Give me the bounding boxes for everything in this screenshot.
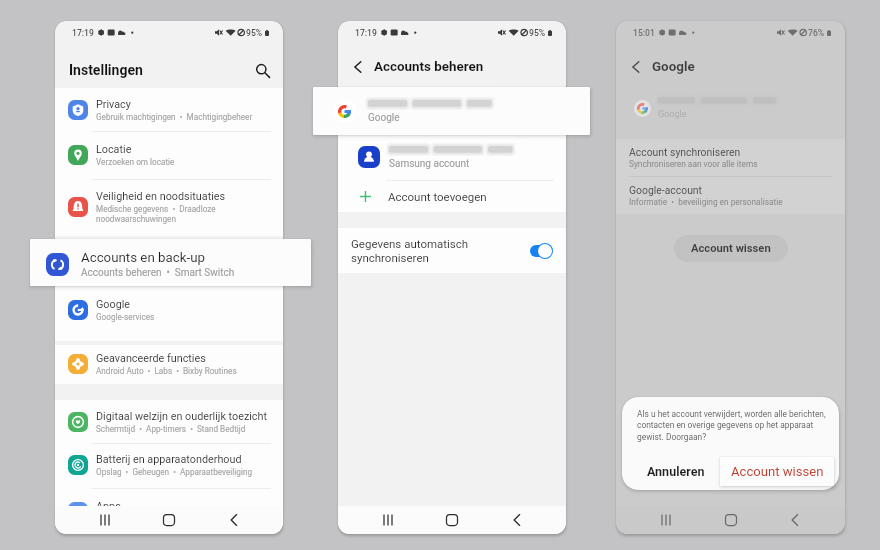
staticText: Privacy [96,98,131,111]
staticText: Account wissen [731,464,824,479]
staticText: Google [652,59,695,75]
button[interactable]: Account synchroniseren [616,139,845,176]
staticText: Apps [96,500,121,513]
button[interactable]: Home [437,506,467,534]
staticText: Google [96,298,131,311]
staticText: 15:01 [633,28,655,38]
staticText: Schermtijd • App-timers • Stand Bedtijd [96,424,246,434]
button[interactable]: Gegevens automatisch synchroniseren [338,228,566,273]
button[interactable]: Search [250,58,274,82]
button[interactable]: Google [616,91,845,125]
button[interactable]: Google [55,286,283,334]
button[interactable]: Samsung account [338,134,566,180]
staticText: Annuleren [647,464,705,479]
staticText: Opslag • Geheugen • Apparaatbeveiliging [96,467,253,477]
staticText: Digitaal welzijn en ouderlijk toezicht [96,410,268,423]
staticText: Google [368,112,400,124]
button[interactable]: Geavanceerde functies [55,345,283,383]
staticText: Veiligheid en noodsituaties [96,190,226,203]
button[interactable]: Back [625,56,647,78]
button[interactable]: Account wissen [720,457,834,486]
staticText: Google-account [629,184,702,196]
staticText: Account synchroniseren [629,146,741,158]
staticText: Standaard-apps • App-instellingen [96,514,223,524]
staticText: Android Auto • Labs • Bixby Routines [96,366,237,376]
staticText: Google [658,109,687,120]
staticText: 76% [808,28,825,38]
staticText: Gegevens automatisch synchroniseren [351,237,530,265]
staticText: 17:19 [355,28,377,38]
button[interactable]: Privacy [55,88,283,131]
staticText: 95% [246,28,263,38]
button[interactable]: Account wissen [674,235,788,262]
staticText: Instellingen [69,62,143,78]
button[interactable]: Digitaal welzijn en ouderlijk toezicht [55,400,283,443]
button[interactable]: Recent apps [373,506,403,534]
button[interactable]: Home [154,506,184,534]
staticText: 95% [529,28,546,38]
staticText: Als u het account verwijdert, worden all… [637,409,829,442]
button[interactable]: Recent apps [90,506,120,534]
button[interactable]: Recent apps [651,506,681,534]
staticText: Accounts en back-up [81,250,205,266]
button[interactable]: Google-account [616,177,845,214]
staticText: Account toevoegen [388,190,487,203]
staticText: Accounts beheren • Smart Switch [81,267,235,279]
staticText: Batterij en apparaatonderhoud [96,453,242,466]
button[interactable]: Back [780,506,810,534]
staticText: Informatie • beveiliging en personalisat… [629,197,783,207]
staticText: Gebruik machtigingen • Machtigingbeheer [96,112,253,122]
button[interactable]: Locatie [55,131,283,179]
button[interactable]: Account toevoegen [338,180,566,212]
button[interactable]: Batterij en apparaatonderhoud [55,443,283,486]
button[interactable]: Home [716,506,746,534]
staticText: Google-services [96,312,155,322]
staticText: Accounts beheren [374,59,484,75]
button[interactable]: Back [347,56,369,78]
staticText: Synchroniseren aan voor alle items [629,159,758,169]
staticText: Samsung account [389,158,470,170]
staticText: Medische gegevens • Draadloze noodwaarsc… [96,204,220,224]
button[interactable]: Back [502,506,532,534]
button[interactable]: Apps [55,490,283,533]
staticText: Geavanceerde functies [96,352,206,365]
button[interactable]: Google [313,87,590,135]
button[interactable]: Accounts en back-up [30,239,311,286]
staticText: Account wissen [691,242,771,255]
button[interactable]: Annuleren [636,460,716,482]
staticText: Verzoeken om locatie [96,157,175,167]
staticText: 17:19 [72,28,94,38]
staticText: Locatie [96,143,132,156]
button[interactable]: Veiligheid en noodsituaties [55,179,283,234]
button[interactable]: Back [219,506,249,534]
